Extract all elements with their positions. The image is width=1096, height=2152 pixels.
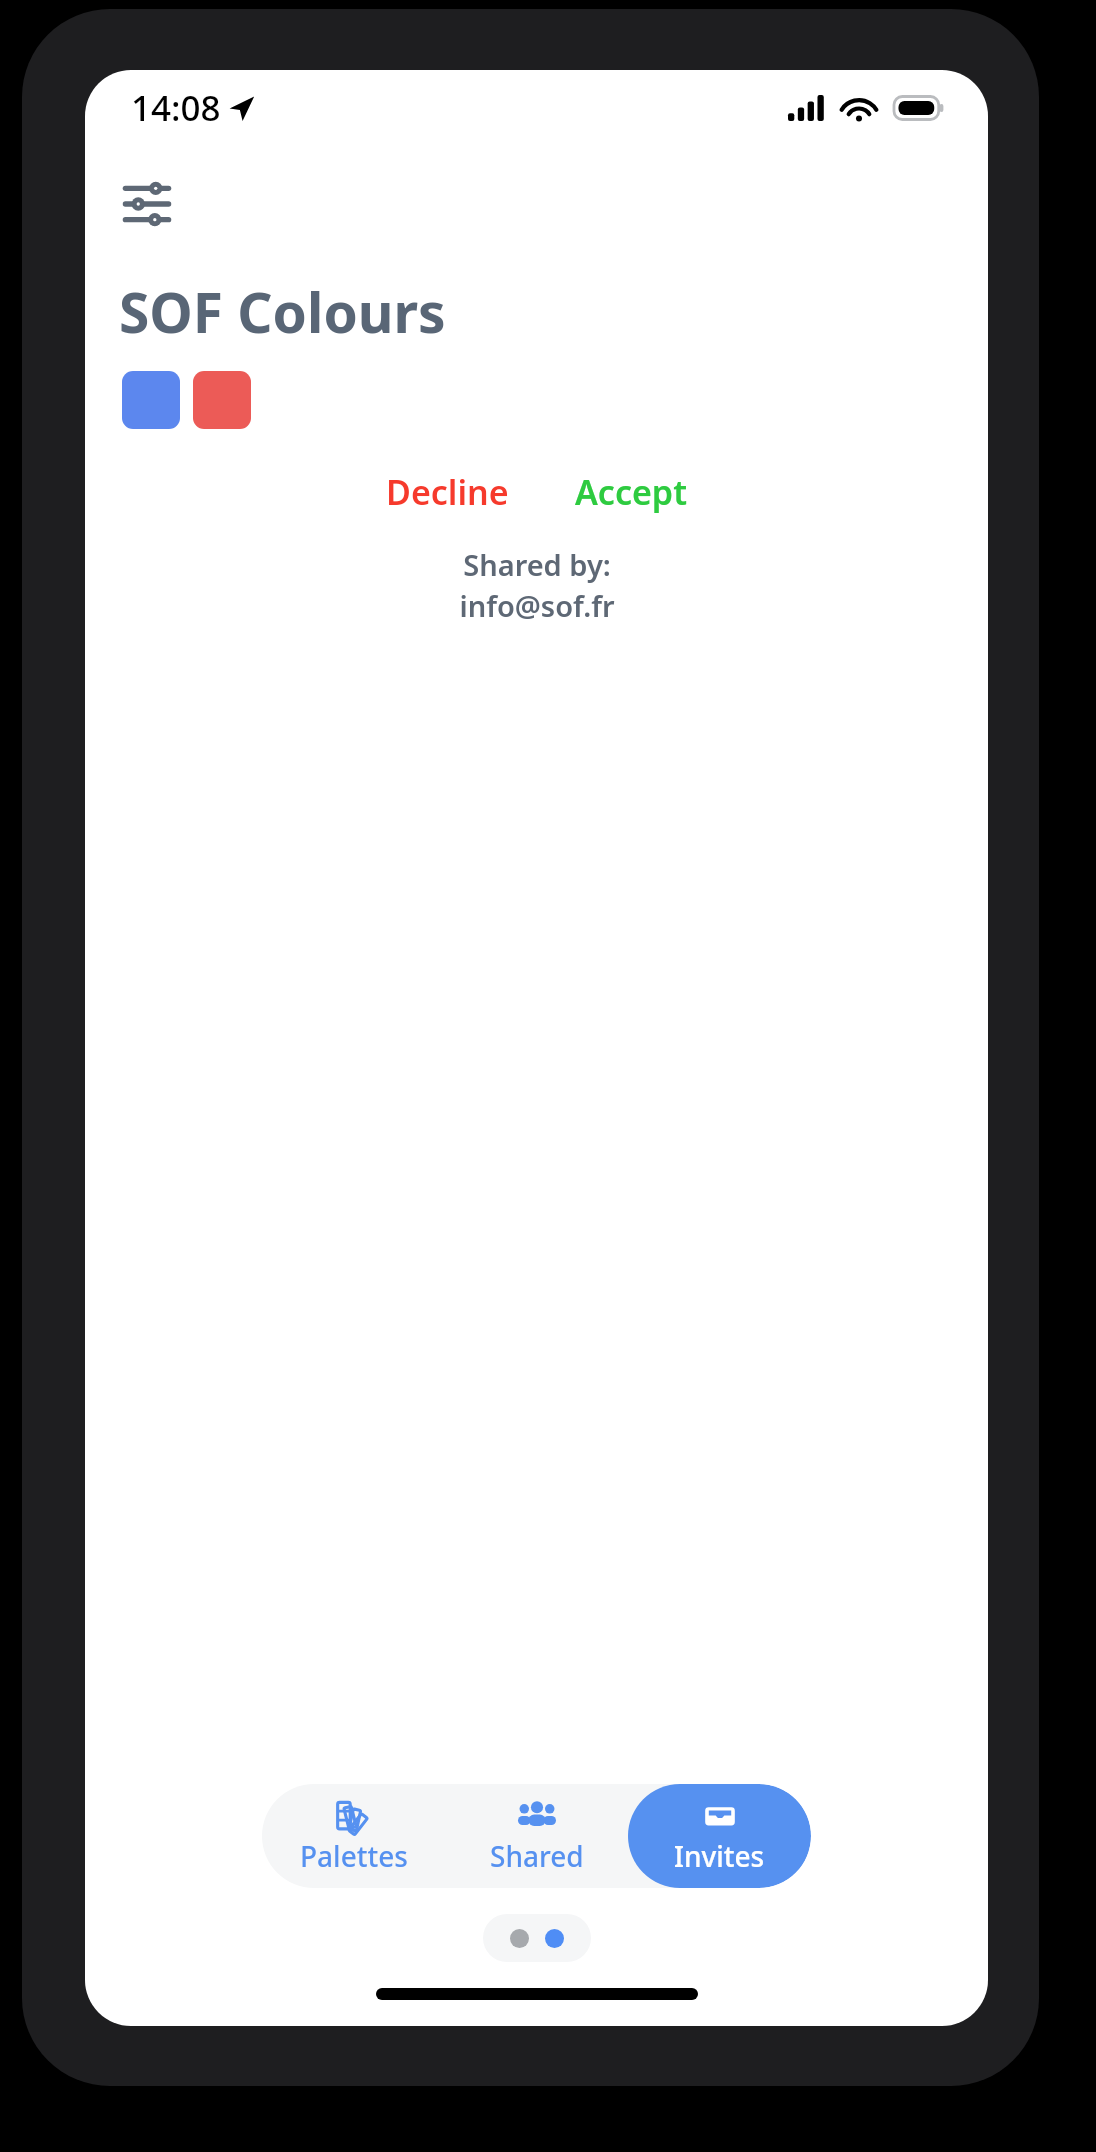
staticText: Accept xyxy=(575,469,687,515)
button[interactable]: Page 2 xyxy=(545,1929,564,1948)
button[interactable]: Palettes xyxy=(262,1784,445,1888)
staticText: SOF Colours xyxy=(119,274,446,349)
staticText: Invites xyxy=(674,1837,765,1875)
button[interactable]: Page 1 xyxy=(510,1929,529,1948)
button[interactable]: Accept xyxy=(563,461,699,523)
staticText: info@sof.fr xyxy=(459,586,615,625)
button[interactable]: Red swatch xyxy=(193,371,251,429)
staticText: Decline xyxy=(386,469,509,515)
staticText: Palettes xyxy=(300,1837,408,1875)
staticText: Shared by: xyxy=(463,545,611,584)
button[interactable]: Filter settings xyxy=(111,168,183,240)
button[interactable]: Decline xyxy=(374,461,521,523)
button[interactable]: Invites xyxy=(628,1784,811,1888)
staticText: 14:08 xyxy=(131,84,221,132)
staticText: Shared xyxy=(490,1837,584,1875)
button[interactable]: Blue swatch xyxy=(122,371,180,429)
button[interactable]: Shared xyxy=(445,1784,628,1888)
